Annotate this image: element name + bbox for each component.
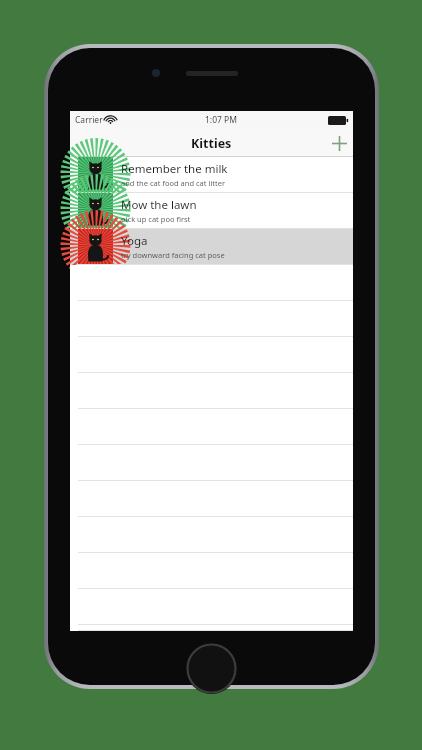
button[interactable]: Yoga xyxy=(70,229,353,265)
staticText: Mow the lawn xyxy=(121,197,197,213)
button[interactable]: Add xyxy=(325,129,353,157)
staticText: 1:07 PM xyxy=(205,114,237,126)
other: Home xyxy=(186,643,237,694)
staticText: Remember the milk xyxy=(121,161,228,177)
staticText: and the cat food and cat litter xyxy=(121,178,226,188)
staticText: Kitties xyxy=(191,135,232,152)
button[interactable]: Remember the milk xyxy=(70,157,353,193)
staticText: Yoga xyxy=(121,233,148,249)
staticText: try downward facing cat pose xyxy=(121,250,225,260)
button[interactable]: Mow the lawn xyxy=(70,193,353,229)
staticText: pick up cat poo first xyxy=(121,214,191,224)
staticText: Carrier xyxy=(75,114,103,126)
